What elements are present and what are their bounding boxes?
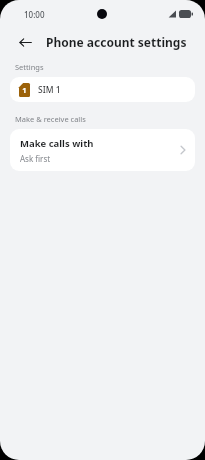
staticText: Make & receive calls xyxy=(15,114,86,124)
staticText: 1 xyxy=(22,85,27,95)
staticText: Ask first xyxy=(20,153,51,164)
staticText: 10:00 xyxy=(24,9,45,20)
staticText: Phone account settings xyxy=(46,34,187,50)
staticText: Make calls with xyxy=(20,137,94,150)
button[interactable]: 1 xyxy=(10,77,195,102)
button[interactable]: Back xyxy=(14,31,36,53)
staticText: SIM 1 xyxy=(38,84,61,96)
button[interactable]: Make calls with xyxy=(10,129,195,171)
staticText: Settings xyxy=(15,62,44,72)
